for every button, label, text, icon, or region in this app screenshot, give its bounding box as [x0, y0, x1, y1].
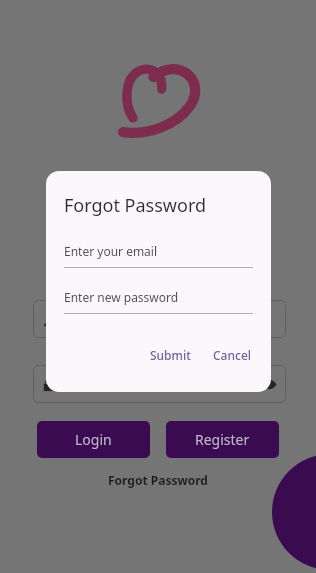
staticText: Enter your email — [64, 243, 158, 259]
staticText: Forgot Password — [108, 472, 208, 488]
button[interactable]: Forgot Password — [102, 470, 214, 490]
staticText: Enter new password — [64, 289, 179, 305]
button[interactable]: Login — [37, 421, 150, 458]
staticText: Submit — [150, 347, 191, 363]
button[interactable]: Password — [33, 365, 286, 403]
staticText: Register — [195, 430, 250, 449]
button[interactable]: Email — [33, 300, 286, 338]
button[interactable]: Submit — [145, 343, 196, 367]
staticText: Login — [75, 430, 112, 449]
staticText: Forgot Password — [64, 193, 207, 218]
button[interactable]: Register — [166, 421, 279, 458]
button[interactable]: Cancel — [208, 343, 257, 367]
staticText: Cancel — [213, 347, 252, 363]
